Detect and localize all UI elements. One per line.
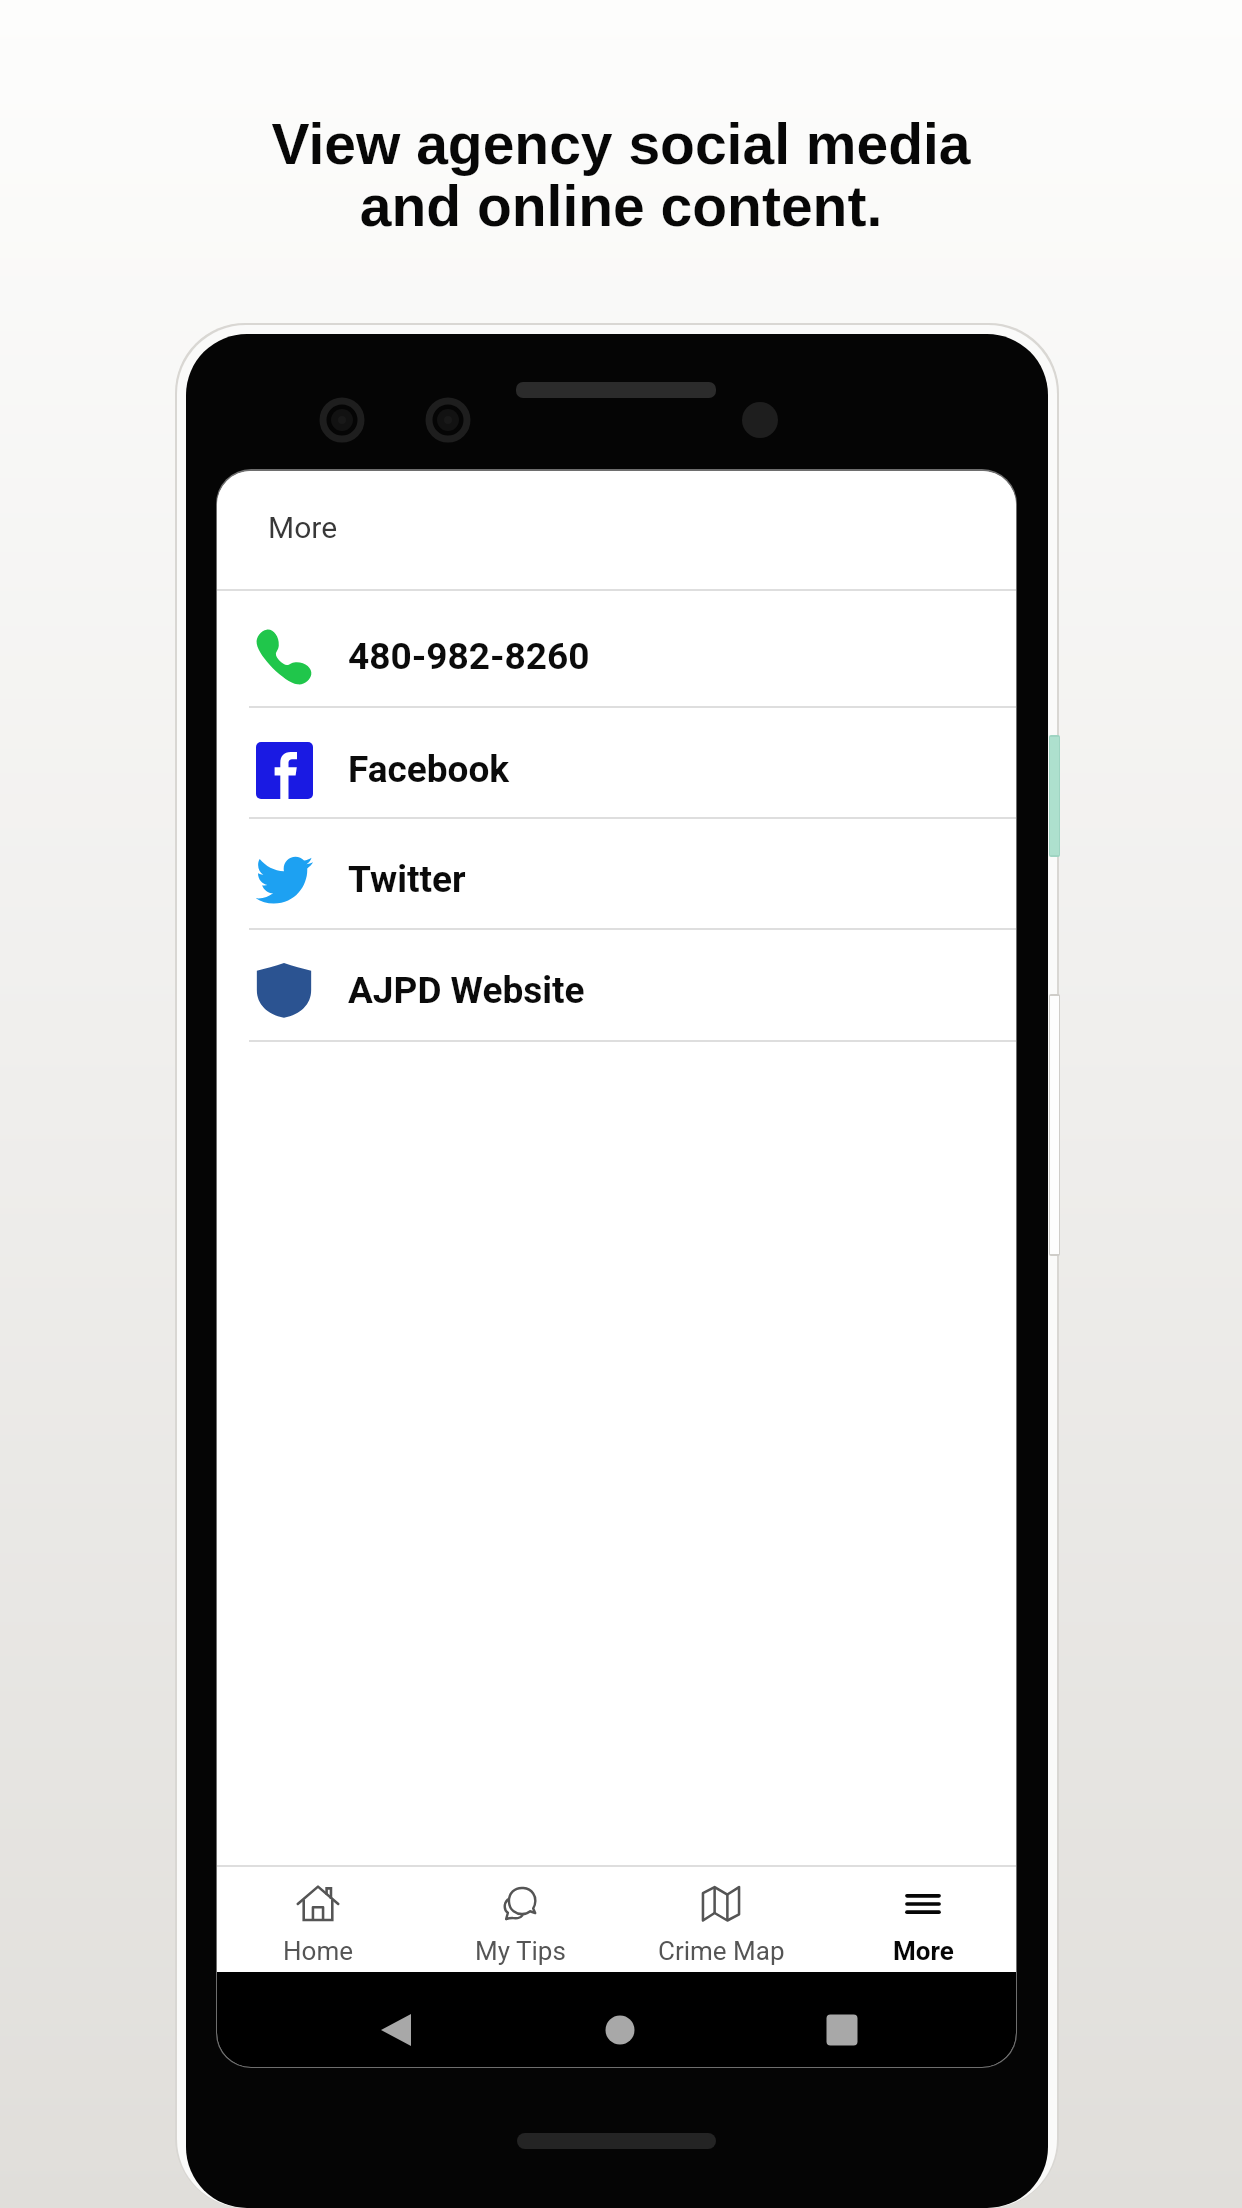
button[interactable]: Crime Map	[626, 1867, 816, 1972]
other: Call	[255, 628, 313, 686]
staticText: My Tips	[475, 1936, 566, 1966]
button[interactable]: AJPD Website	[217, 930, 1016, 1040]
button[interactable]: More	[828, 1867, 1016, 1972]
staticText: View agency social media and online cont…	[0, 112, 1242, 239]
staticText: Crime Map	[658, 1936, 785, 1966]
button[interactable]: Home	[223, 1867, 413, 1972]
staticText: 480-982-8260	[348, 635, 590, 678]
button[interactable]: Twitter	[217, 819, 1016, 928]
staticText: More	[893, 1936, 954, 1966]
button[interactable]: Call	[217, 591, 1016, 706]
other: AJPD Website	[256, 962, 312, 1018]
staticText: More	[268, 510, 338, 545]
other: Twitter	[254, 850, 314, 910]
staticText: AJPD Website	[348, 969, 585, 1012]
staticText: Twitter	[348, 858, 466, 901]
other: Facebook	[256, 742, 313, 799]
button[interactable]: My Tips	[425, 1867, 615, 1972]
staticText: Facebook	[348, 748, 510, 791]
button[interactable]: Facebook	[217, 708, 1016, 817]
staticText: Home	[283, 1936, 353, 1966]
